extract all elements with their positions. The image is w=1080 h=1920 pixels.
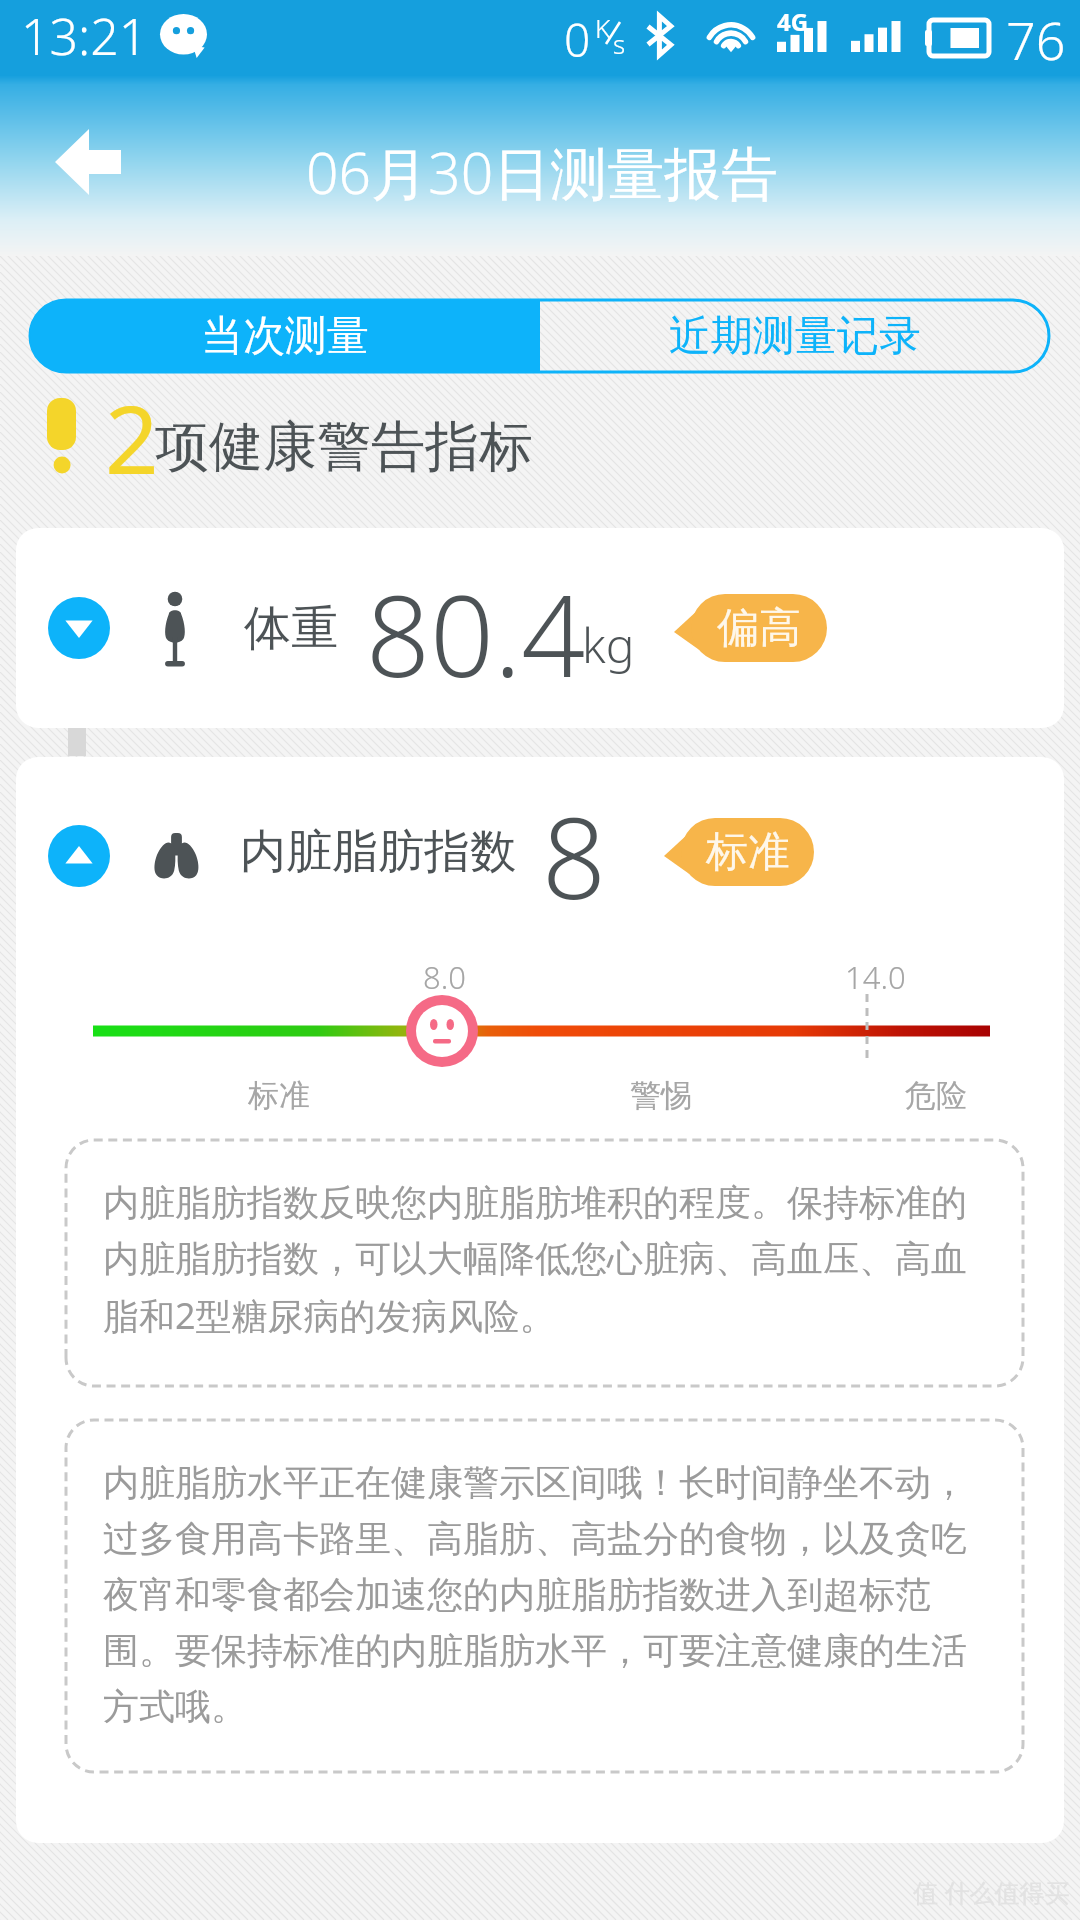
staticText: 8 <box>542 779 606 932</box>
staticText: 标准 <box>248 1076 310 1115</box>
staticText: 06月30日测量报告 <box>306 133 779 211</box>
staticText: 危险 <box>905 1076 967 1115</box>
staticText: s <box>613 26 626 61</box>
staticText: 76 <box>1006 4 1066 75</box>
staticText: 偏高 <box>717 602 801 655</box>
staticText: 项健康警告指标 <box>155 413 533 481</box>
staticText: 内脏脂肪指数 <box>240 823 516 881</box>
staticText: 警惕 <box>630 1076 692 1115</box>
staticText: 8.0 <box>423 956 466 998</box>
staticText: 13:21 <box>21 2 148 70</box>
staticText: 80.4 <box>366 557 586 710</box>
staticText: 内脏脂肪指数反映您内脏脂肪堆积的程度。保持标准的内脏脂肪指数，可以大幅降低您心脏… <box>103 1180 993 1340</box>
staticText: 当次测量 <box>201 310 369 363</box>
button[interactable]: Collapse <box>48 825 110 887</box>
button[interactable]: Back <box>38 128 138 214</box>
staticText: 体重 <box>244 599 338 658</box>
button[interactable]: 当次测量 <box>30 300 540 372</box>
staticText: 2 <box>105 374 159 502</box>
staticText: 标准 <box>706 826 790 879</box>
staticText: 14.0 <box>845 956 906 998</box>
staticText: 4G <box>777 5 809 38</box>
staticText: 内脏脂肪水平正在健康警示区间哦！长时间静坐不动，过多食用高卡路里、高脂肪、高盐分… <box>103 1460 993 1730</box>
staticText: 值 什么值得买 <box>913 1875 1070 1909</box>
staticText: K <box>595 10 611 45</box>
staticText: kg <box>582 612 635 677</box>
staticText: 近期测量记录 <box>669 310 921 363</box>
button[interactable]: 近期测量记录 <box>540 300 1049 372</box>
staticText: 0 <box>564 8 591 71</box>
button[interactable]: 体重 <box>16 528 1064 728</box>
